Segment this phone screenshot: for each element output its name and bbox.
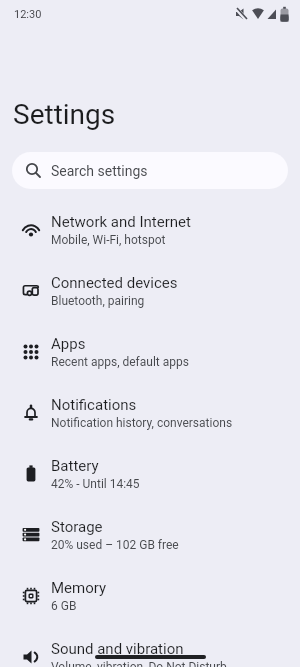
staticText: Notification history, conversations: [51, 416, 233, 430]
staticText: 20% used – 102 GB free: [51, 538, 179, 552]
button[interactable]: Storage: [0, 504, 300, 565]
staticText: Storage: [51, 518, 103, 536]
staticText: Connected devices: [51, 274, 178, 292]
staticText: Battery: [51, 457, 99, 475]
button[interactable]: Memory: [0, 565, 300, 626]
staticText: Recent apps, default apps: [51, 355, 189, 369]
staticText: Bluetooth, pairing: [51, 294, 145, 308]
button[interactable]: Sound and vibration: [0, 626, 300, 667]
staticText: 12:30: [14, 8, 42, 21]
button[interactable]: Network and Internet: [0, 199, 300, 260]
staticText: Sound and vibration: [51, 640, 184, 658]
button[interactable]: Connected devices: [0, 260, 300, 321]
staticText: Mobile, Wi-Fi, hotspot: [51, 233, 166, 247]
staticText: Apps: [51, 335, 86, 353]
staticText: Memory: [51, 579, 107, 597]
button[interactable]: Notifications: [0, 382, 300, 443]
staticText: Network and Internet: [51, 213, 191, 231]
staticText: 6 GB: [51, 599, 77, 613]
button[interactable]: Battery: [0, 443, 300, 504]
staticText: Volume, vibration, Do Not Disturb: [51, 660, 227, 667]
staticText: Search settings: [51, 163, 148, 179]
staticText: Notifications: [51, 396, 137, 414]
button[interactable]: Apps: [0, 321, 300, 382]
button[interactable]: Search settings: [12, 152, 288, 189]
staticText: 42% - Until 14:45: [51, 477, 140, 491]
staticText: Settings: [13, 98, 116, 131]
